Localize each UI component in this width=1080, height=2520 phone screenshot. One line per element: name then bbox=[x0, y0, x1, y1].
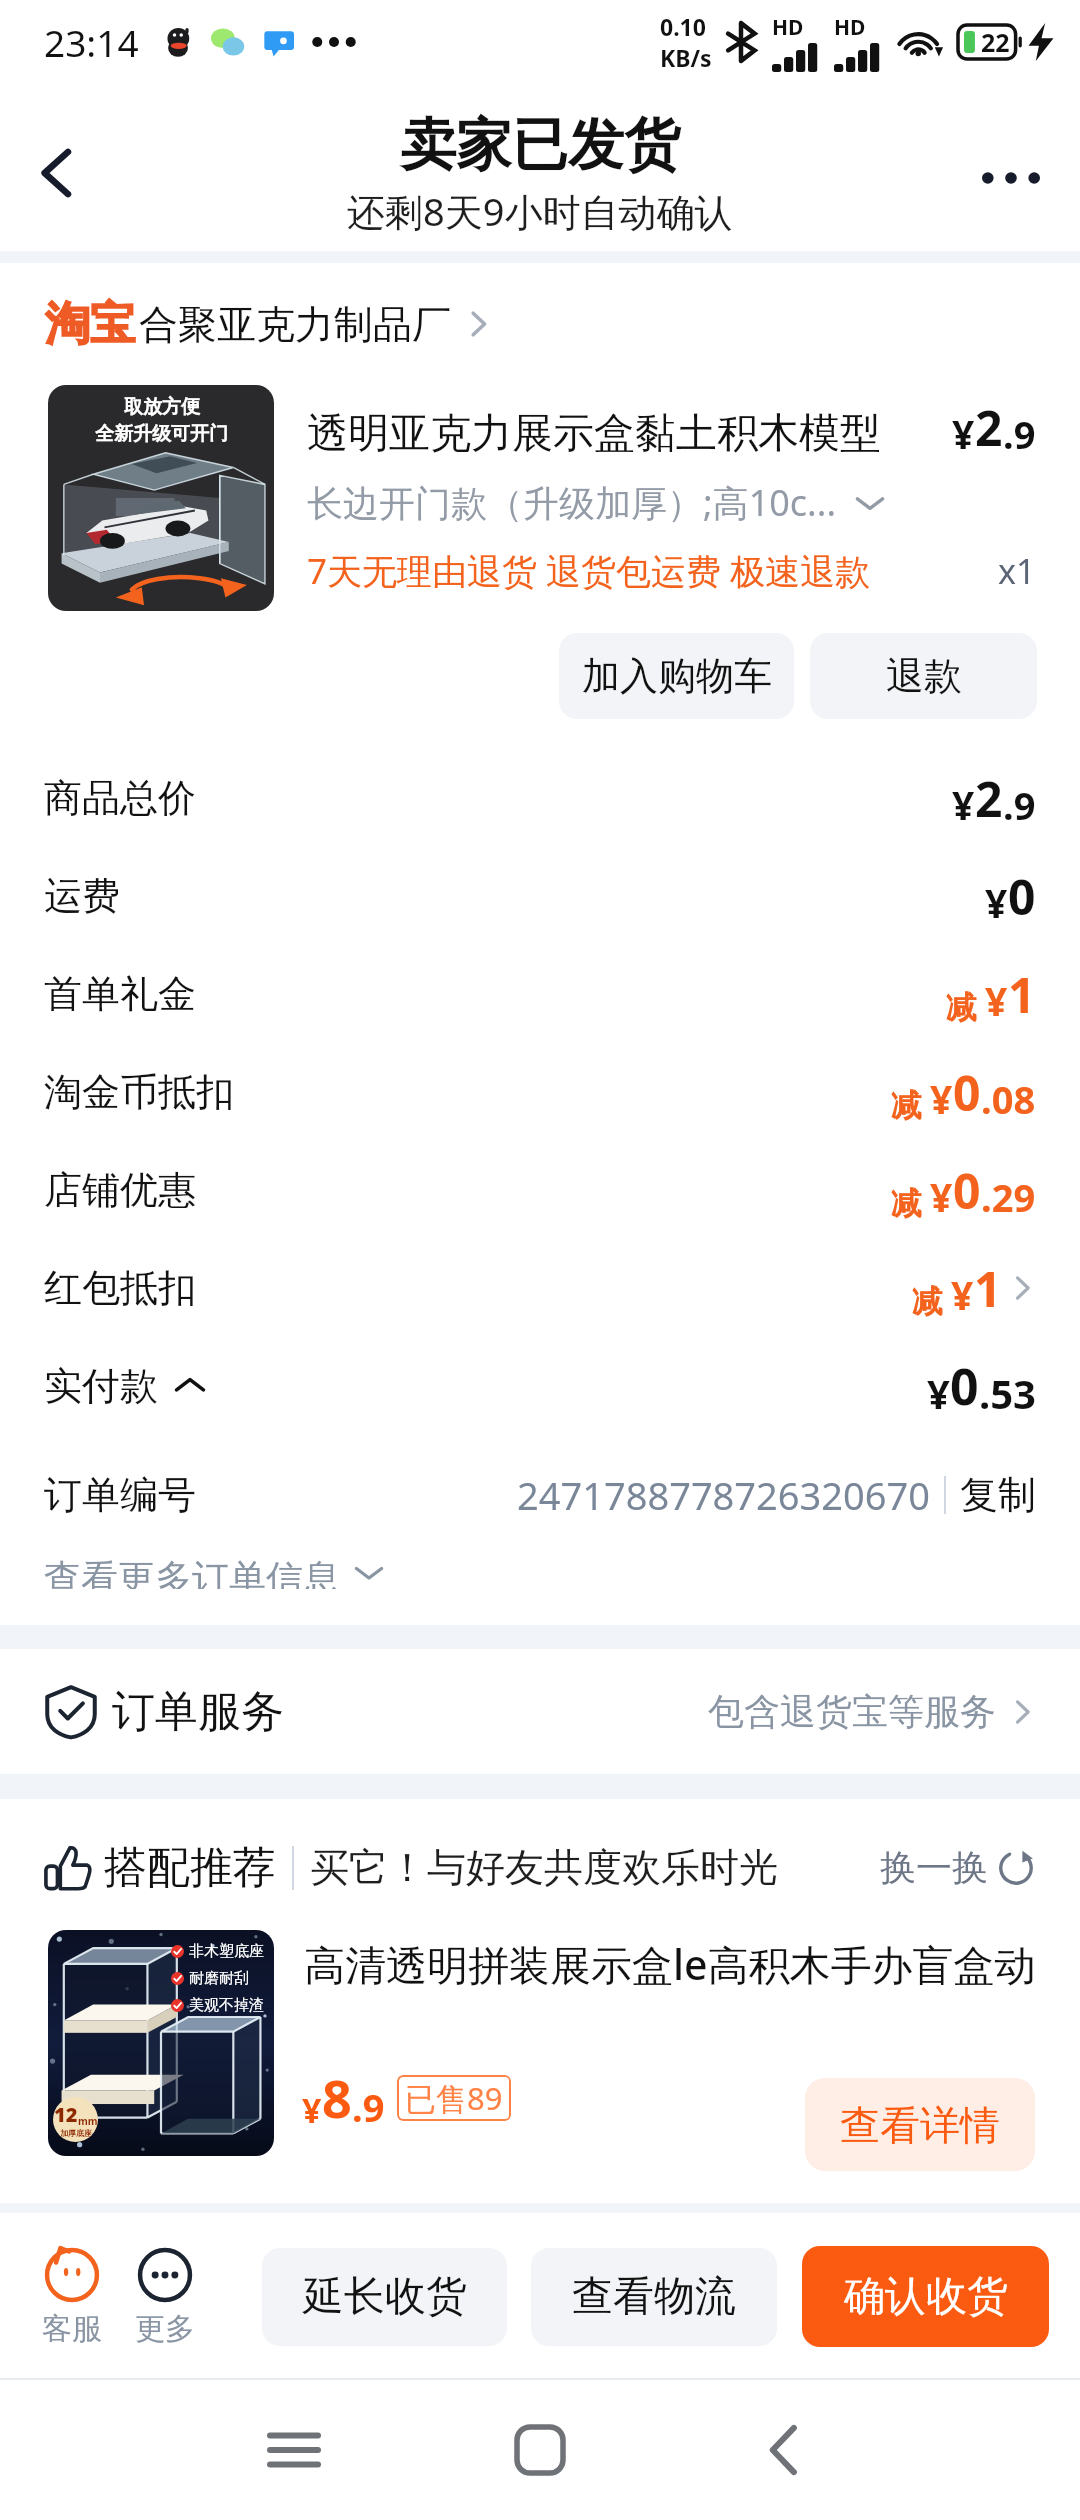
staticText: 减 bbox=[891, 1184, 922, 1223]
staticText: 高清透明拼装展示盒le高积木手办盲盒动 bbox=[304, 1936, 1036, 1992]
staticText: 查看更多订单信息 bbox=[44, 1555, 340, 1589]
staticText: 非木塑底座 bbox=[189, 1942, 264, 1961]
staticText: 美观不掉渣 bbox=[189, 1996, 264, 2015]
button[interactable]: Recent apps bbox=[244, 2400, 344, 2500]
staticText: .29 bbox=[981, 1171, 1036, 1223]
button[interactable]: 实付款 bbox=[0, 1337, 1080, 1435]
staticText: 合聚亚克力制品厂 bbox=[139, 300, 451, 349]
staticText: ¥ bbox=[985, 974, 1008, 1027]
staticText: ¥ bbox=[930, 1170, 953, 1223]
staticText: 0 bbox=[1008, 864, 1036, 929]
staticText: 取放方便 bbox=[124, 395, 200, 419]
staticText: 首单礼金 bbox=[44, 970, 196, 1018]
staticText: 8 bbox=[322, 2062, 352, 2133]
staticText: x1 bbox=[998, 548, 1036, 594]
button[interactable]: 查看详情 bbox=[805, 2078, 1035, 2171]
staticText: 0 bbox=[953, 1158, 981, 1223]
button[interactable]: 更多 bbox=[119, 2246, 211, 2348]
button[interactable]: 非木塑底座 bbox=[0, 1930, 1080, 2175]
staticText: 客服 bbox=[42, 2310, 102, 2348]
staticText: 还剩8天9小时自动确认 bbox=[347, 185, 733, 237]
staticText: ¥ bbox=[951, 1268, 974, 1321]
staticText: 实付款 bbox=[44, 1362, 158, 1410]
staticText: 1 bbox=[974, 1256, 1002, 1321]
staticText: 全新升级可开门 bbox=[95, 422, 228, 446]
button[interactable]: Home bbox=[490, 2400, 590, 2500]
button[interactable]: 延长收货 bbox=[262, 2248, 507, 2346]
staticText: 淘金币抵扣 bbox=[44, 1068, 234, 1116]
staticText: ¥ bbox=[302, 2087, 322, 2133]
staticText: 运费 bbox=[44, 872, 120, 920]
staticText: 延长收货 bbox=[303, 2271, 467, 2323]
staticText: 22 bbox=[981, 25, 1010, 59]
staticText: 订单服务 bbox=[112, 1685, 284, 1739]
staticText: 加厚底座 bbox=[60, 2128, 92, 2138]
staticText: 23:14 bbox=[44, 17, 139, 67]
button[interactable]: 运费 bbox=[0, 847, 1080, 945]
button[interactable]: 换一换 bbox=[880, 1845, 1036, 1890]
button[interactable]: 红包抵扣 bbox=[0, 1239, 1080, 1337]
staticText: 7天无理由退货 退货包运费 极速退款 bbox=[307, 547, 871, 595]
staticText: 耐磨耐刮 bbox=[189, 1969, 249, 1988]
button[interactable]: 店铺优惠 bbox=[0, 1141, 1080, 1239]
staticText: 减 bbox=[891, 1086, 922, 1125]
staticText: .9 bbox=[352, 2081, 385, 2133]
staticText: 订单编号 bbox=[44, 1471, 196, 1519]
staticText: 换一换 bbox=[880, 1845, 988, 1890]
button[interactable]: 淘宝 bbox=[0, 263, 1080, 385]
staticText: 退款 bbox=[886, 652, 962, 700]
staticText: 卖家已发货 bbox=[400, 110, 680, 181]
button[interactable]: 取放方便 bbox=[0, 385, 1080, 611]
staticText: 加入购物车 bbox=[582, 652, 772, 700]
staticText: 买它！与好友共度欢乐时光 bbox=[310, 1843, 778, 1892]
staticText: 长边开门款（升级加厚）;高10c... bbox=[307, 478, 837, 527]
staticText: HD bbox=[834, 13, 866, 42]
staticText: 2 bbox=[975, 766, 1003, 831]
staticText: 2 bbox=[975, 395, 1003, 460]
button[interactable]: 淘金币抵扣 bbox=[0, 1043, 1080, 1141]
button[interactable]: Back bbox=[11, 128, 101, 218]
button[interactable]: 客服 bbox=[26, 2246, 118, 2348]
button[interactable]: 订单服务 bbox=[0, 1649, 1080, 1774]
button[interactable]: 首单礼金 bbox=[0, 945, 1080, 1043]
staticText: 搭配推荐 bbox=[104, 1841, 276, 1895]
staticText: 0 bbox=[950, 1352, 979, 1420]
staticText: 店铺优惠 bbox=[44, 1166, 196, 1214]
button[interactable]: 加入购物车 bbox=[559, 633, 794, 719]
button[interactable]: More options bbox=[966, 133, 1056, 223]
staticText: .08 bbox=[981, 1073, 1036, 1125]
staticText: mm bbox=[78, 2114, 98, 2128]
staticText: .9 bbox=[1003, 779, 1036, 831]
staticText: 0 bbox=[953, 1060, 981, 1125]
staticText: 减 bbox=[912, 1282, 943, 1321]
staticText: 商品总价 bbox=[44, 774, 196, 822]
button[interactable]: 商品总价 bbox=[0, 749, 1080, 847]
staticText: ¥ bbox=[985, 876, 1008, 929]
button[interactable]: 退款 bbox=[810, 633, 1037, 719]
staticText: 12 bbox=[54, 2101, 78, 2128]
staticText: 查看物流 bbox=[572, 2271, 736, 2323]
button[interactable]: 确认收货 bbox=[802, 2246, 1049, 2347]
staticText: KB/s bbox=[660, 42, 712, 73]
staticText: ¥ bbox=[952, 407, 975, 460]
staticText: 确认收货 bbox=[844, 2271, 1008, 2323]
staticText: 0.10 bbox=[660, 11, 706, 42]
staticText: 更多 bbox=[135, 2310, 195, 2348]
button[interactable]: 查看更多订单信息 bbox=[44, 1555, 1036, 1589]
staticText: 1 bbox=[1008, 962, 1036, 1027]
staticText: 查看详情 bbox=[840, 2100, 1000, 2150]
button[interactable]: 订单编号 bbox=[44, 1435, 1036, 1555]
button[interactable]: 查看物流 bbox=[531, 2248, 777, 2346]
staticText: ¥ bbox=[952, 778, 975, 831]
staticText: 淘宝 bbox=[45, 296, 135, 353]
staticText: ¥ bbox=[930, 1072, 953, 1125]
staticText: 包含退货宝等服务 bbox=[708, 1689, 996, 1734]
staticText: 复制 bbox=[960, 1471, 1036, 1519]
staticText: 透明亚克力展示盒黏土积木模型 bbox=[307, 408, 942, 460]
staticText: HD bbox=[772, 13, 804, 42]
button[interactable]: Back bbox=[731, 2400, 831, 2500]
staticText: 减 bbox=[946, 988, 977, 1027]
staticText: .9 bbox=[1003, 408, 1036, 460]
staticText: .53 bbox=[979, 1366, 1036, 1420]
staticText: 已售89 bbox=[405, 2077, 503, 2119]
